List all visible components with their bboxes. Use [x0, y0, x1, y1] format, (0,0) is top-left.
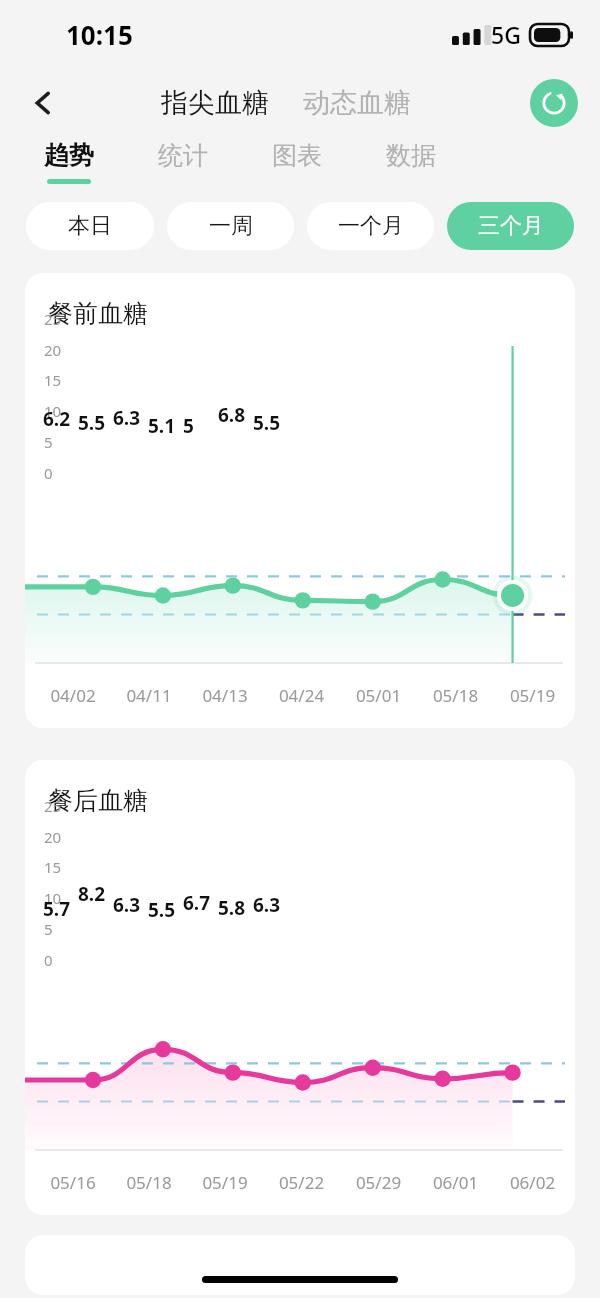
staticText: 数据 — [386, 140, 436, 171]
staticText: 04/11 — [111, 684, 187, 707]
staticText: 5 — [44, 432, 53, 452]
staticText: 04/13 — [187, 684, 263, 707]
staticText: 5.5 — [78, 410, 106, 436]
staticText: 统计 — [158, 140, 208, 171]
staticText: 趋势 — [44, 140, 94, 171]
staticText: 15 — [44, 370, 62, 390]
button[interactable]: 一个月 — [307, 202, 434, 250]
staticText: 三个月 — [478, 212, 544, 240]
staticText: 05/01 — [340, 684, 417, 707]
staticText: 10 — [44, 888, 62, 908]
staticText: 05/22 — [263, 1171, 340, 1194]
staticText: 20 — [44, 827, 62, 847]
staticText: 10:15 — [66, 17, 133, 52]
staticText: 指尖血糖 — [161, 86, 269, 120]
staticText: 25 — [44, 796, 62, 816]
button[interactable]: Refresh — [530, 79, 578, 127]
button[interactable]: 趋势 — [42, 138, 96, 186]
staticText: 6.7 — [183, 890, 211, 916]
staticText: 6.3 — [113, 892, 141, 918]
staticText: 一周 — [209, 212, 253, 240]
staticText: 10 — [44, 401, 62, 421]
staticText: 5.1 — [148, 413, 176, 439]
staticText: 25 — [44, 309, 62, 329]
staticText: 5G — [491, 19, 521, 50]
button[interactable]: 指尖血糖 — [155, 80, 275, 126]
button[interactable]: 统计 — [156, 138, 210, 186]
staticText: 15 — [44, 857, 62, 877]
staticText: 04/02 — [35, 684, 111, 707]
staticText: 6.2 — [43, 406, 71, 432]
staticText: 餐后血糖 — [48, 785, 148, 816]
staticText: 0 — [44, 950, 53, 970]
staticText: 8.2 — [78, 881, 106, 907]
button[interactable]: 数据 — [384, 138, 438, 186]
staticText: 05/18 — [111, 1171, 187, 1194]
staticText: 6.3 — [113, 405, 141, 431]
staticText: 本日 — [68, 212, 112, 240]
staticText: 0 — [44, 463, 53, 483]
staticText: 5.7 — [43, 896, 71, 922]
button[interactable]: 图表 — [270, 138, 324, 186]
staticText: 图表 — [272, 140, 322, 171]
staticText: 05/19 — [187, 1171, 263, 1194]
staticText: 5.8 — [218, 895, 246, 921]
button[interactable]: 动态血糖 — [297, 80, 417, 126]
staticText: 5.5 — [148, 897, 176, 923]
button[interactable]: 一周 — [167, 202, 294, 250]
staticText: 05/18 — [417, 684, 494, 707]
staticText: 05/16 — [35, 1171, 111, 1194]
staticText: 05/29 — [340, 1171, 417, 1194]
staticText: 5 — [183, 413, 194, 439]
staticText: 6.8 — [218, 402, 246, 428]
staticText: 06/02 — [494, 1171, 571, 1194]
staticText: 6.3 — [253, 892, 281, 918]
staticText: 动态血糖 — [303, 86, 411, 120]
staticText: 一个月 — [338, 212, 404, 240]
staticText: 05/19 — [494, 684, 571, 707]
button[interactable]: Back — [20, 80, 66, 126]
button[interactable]: 三个月 — [447, 202, 574, 250]
staticText: 20 — [44, 340, 62, 360]
staticText: 06/01 — [417, 1171, 494, 1194]
staticText: 5 — [44, 919, 53, 939]
button[interactable] — [25, 1235, 575, 1295]
staticText: 04/24 — [263, 684, 340, 707]
staticText: 餐前血糖 — [48, 298, 148, 329]
staticText: 5.5 — [253, 410, 281, 436]
button[interactable]: 本日 — [26, 202, 154, 250]
